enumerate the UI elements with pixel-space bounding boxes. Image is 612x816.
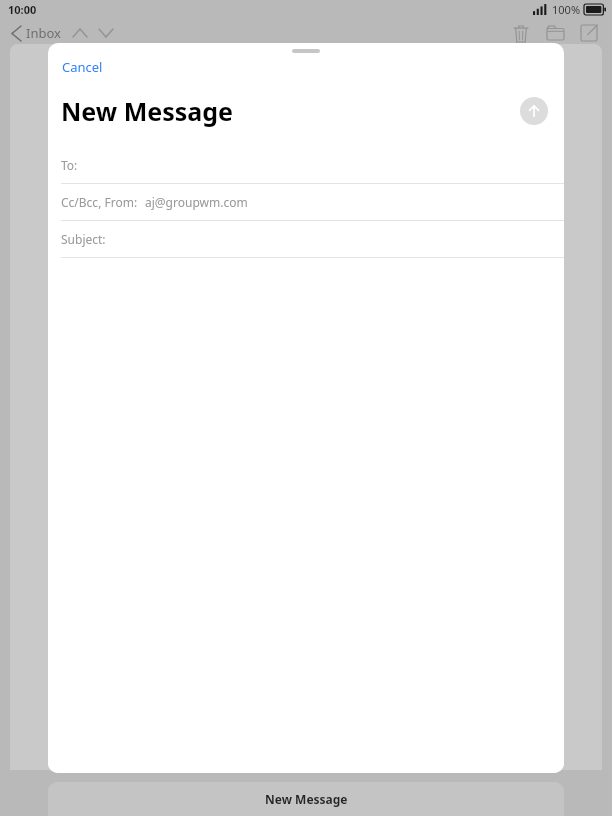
button[interactable]: Delete (504, 20, 538, 46)
staticText: To: (61, 157, 78, 173)
button[interactable]: Move to folder (538, 20, 572, 46)
button[interactable]: Cc/Bcc, From: (48, 184, 564, 220)
staticText: aj@groupwm.com (145, 194, 248, 210)
button[interactable]: Subject: (48, 221, 564, 257)
staticText: 100% (552, 2, 581, 17)
staticText: New Message (61, 94, 233, 128)
staticText: Subject: (61, 231, 106, 247)
button[interactable]: To: (48, 147, 564, 183)
button[interactable]: Cancel (48, 55, 113, 79)
button[interactable]: Next message (93, 20, 119, 46)
staticText: Cc/Bcc, From: (61, 194, 138, 210)
button[interactable]: New Message (48, 782, 564, 816)
button[interactable]: Send (520, 97, 548, 125)
staticText: New Message (265, 791, 348, 807)
button[interactable]: Inbox (0, 24, 67, 42)
staticText: Cancel (62, 58, 103, 76)
button[interactable]: Previous message (67, 20, 93, 46)
staticText: Inbox (26, 24, 61, 42)
button[interactable]: Compose (572, 20, 606, 46)
staticText: 10:00 (8, 2, 37, 17)
